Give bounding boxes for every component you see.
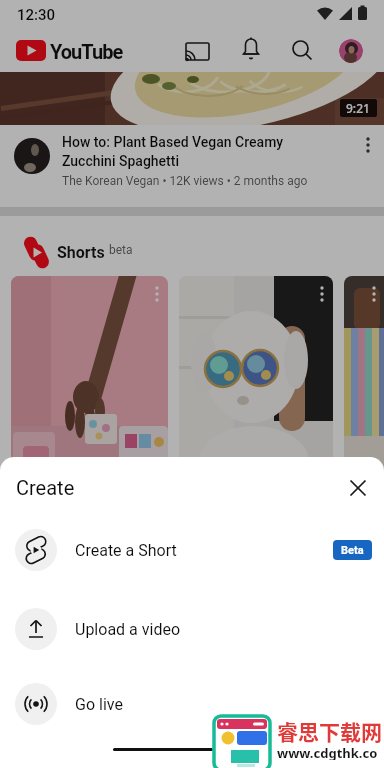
staticText: Go live [75, 695, 123, 714]
staticText: 12:30 [17, 6, 56, 24]
staticText: 9:21 [346, 100, 370, 116]
button[interactable]: How to: Plant Based Vegan Creamy [0, 125, 384, 207]
staticText: Beta [341, 544, 364, 557]
button[interactable] [179, 276, 333, 476]
button[interactable] [338, 468, 378, 508]
button[interactable]: Upload a video [0, 599, 384, 659]
button[interactable] [178, 32, 216, 70]
button[interactable] [284, 31, 322, 69]
staticText: The Korean Vegan • 12K views • 2 months … [62, 174, 308, 188]
button[interactable]: Go live [0, 674, 384, 734]
staticText: Create [16, 476, 75, 499]
staticText: beta [109, 243, 133, 257]
button[interactable] [233, 31, 271, 69]
staticText: Shorts [57, 243, 105, 262]
staticText: Zucchini Spaghetti [62, 153, 180, 169]
staticText: YouTube [50, 40, 123, 63]
staticText: www.cdgthk.com [277, 744, 384, 760]
staticText: Upload a video [75, 620, 181, 639]
button[interactable]: Create a Short [0, 520, 384, 580]
button[interactable] [344, 276, 384, 476]
button[interactable] [16, 40, 46, 61]
button[interactable] [339, 39, 363, 63]
button[interactable] [11, 276, 168, 476]
staticText: 睿思下载网 [277, 716, 382, 744]
staticText: How to: Plant Based Vegan Creamy [62, 134, 284, 150]
staticText: Create a Short [75, 541, 177, 560]
button[interactable]: 9:21 [0, 72, 384, 125]
